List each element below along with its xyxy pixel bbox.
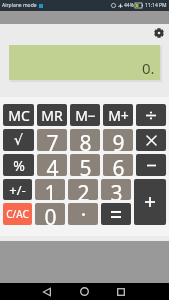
staticText: 8 — [79, 129, 92, 151]
staticText: 5 — [79, 154, 92, 176]
staticText: 4 — [46, 154, 59, 176]
staticText: 7 — [46, 129, 59, 151]
button[interactable]: 7 — [37, 129, 67, 151]
button[interactable]: Recents — [111, 283, 131, 300]
button[interactable]: Divide — [136, 104, 166, 126]
button[interactable]: C/AC — [3, 203, 32, 225]
staticText: MR — [41, 106, 63, 125]
staticText: 0. — [142, 58, 155, 78]
staticText: % — [13, 156, 25, 175]
button[interactable]: Back — [37, 283, 57, 300]
button[interactable]: Decimal point — [68, 203, 98, 225]
button[interactable]: +/- — [3, 179, 32, 200]
button[interactable]: 9 — [103, 129, 133, 151]
staticText: M+ — [108, 106, 129, 125]
button[interactable]: 3 — [101, 179, 131, 200]
button[interactable]: √ — [3, 129, 34, 151]
button[interactable]: 0 — [35, 203, 65, 225]
button[interactable]: 8 — [70, 129, 100, 151]
button[interactable]: 4 — [37, 154, 67, 176]
button[interactable]: 2 — [68, 179, 98, 200]
button[interactable]: 5 — [70, 154, 100, 176]
staticText: 1 — [44, 179, 57, 200]
button[interactable]: 1 — [35, 179, 65, 200]
staticText: MC — [8, 106, 30, 125]
staticText: 2 — [77, 179, 90, 200]
button[interactable]: Minus — [136, 154, 166, 176]
staticText: 0 — [44, 203, 57, 225]
button[interactable]: MR — [37, 104, 67, 126]
staticText: 3 — [110, 179, 123, 200]
button[interactable]: M+ — [103, 104, 133, 126]
staticText: √ — [14, 132, 23, 148]
button[interactable]: 6 — [103, 154, 133, 176]
staticText: Airplane mode — [2, 2, 37, 9]
button[interactable]: Settings — [150, 24, 168, 42]
button[interactable]: % — [3, 154, 34, 176]
button[interactable]: Equals — [101, 203, 131, 225]
staticText: 9 — [112, 129, 125, 151]
staticText: +/- — [9, 181, 26, 199]
staticText: 11:14 PM — [145, 2, 167, 9]
button[interactable]: MC — [3, 104, 34, 126]
staticText: 6 — [112, 154, 125, 176]
button[interactable]: Plus — [134, 179, 166, 225]
button[interactable]: Multiply — [136, 129, 166, 151]
staticText: C/AC — [6, 207, 29, 221]
button[interactable]: M− — [70, 104, 100, 126]
button[interactable]: Home — [74, 283, 94, 300]
staticText: M− — [75, 106, 96, 125]
staticText: 44% — [124, 2, 134, 9]
